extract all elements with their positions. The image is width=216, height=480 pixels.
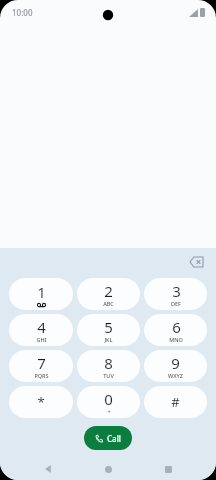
staticText: JKL	[104, 336, 113, 343]
staticText: 9	[171, 353, 180, 373]
button[interactable]: 8	[77, 350, 140, 382]
button[interactable]: Back	[38, 459, 58, 479]
staticText: ABC	[103, 300, 114, 307]
button[interactable]: 0	[77, 386, 140, 418]
staticText: WXYZ	[168, 372, 183, 379]
staticText: 7	[37, 353, 46, 373]
staticText: MNO	[169, 336, 183, 343]
staticText: 4	[37, 317, 46, 337]
staticText: 5	[104, 317, 113, 337]
staticText: #	[171, 393, 180, 411]
button[interactable]: 9	[144, 350, 207, 382]
staticText: PQRS	[34, 372, 49, 379]
staticText: 10:00	[12, 7, 33, 18]
button[interactable]: 2	[77, 278, 140, 310]
staticText: 3	[172, 281, 181, 301]
staticText: 6	[172, 317, 181, 337]
staticText: *	[37, 393, 45, 411]
button[interactable]: 6	[144, 314, 207, 346]
staticText: GHI	[36, 336, 47, 343]
staticText: 0	[104, 389, 113, 409]
staticText: 2	[104, 281, 113, 301]
button[interactable]: #	[144, 386, 207, 418]
button[interactable]: 5	[77, 314, 140, 346]
button[interactable]: 1	[9, 278, 73, 310]
staticText: DEF	[171, 300, 181, 307]
staticText: Call	[107, 433, 121, 444]
button[interactable]: 3	[144, 278, 207, 310]
button[interactable]: Recent apps	[158, 459, 178, 479]
button[interactable]: 7	[9, 350, 73, 382]
button[interactable]: Backspace	[185, 253, 207, 271]
staticText: +	[107, 408, 111, 415]
staticText: 1	[37, 282, 46, 302]
staticText: 8	[104, 353, 113, 373]
button[interactable]: Home	[98, 459, 118, 479]
button[interactable]: *	[9, 386, 73, 418]
button[interactable]: 4	[9, 314, 73, 346]
staticText: TUV	[103, 372, 114, 379]
button[interactable]: Call	[84, 426, 132, 450]
